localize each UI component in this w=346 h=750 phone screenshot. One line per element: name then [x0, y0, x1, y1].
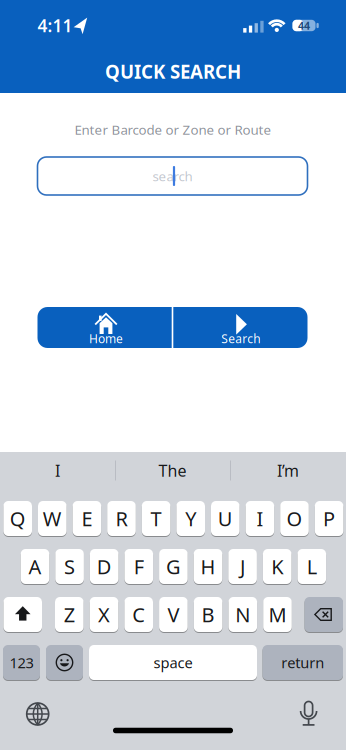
button[interactable]: [286, 687, 330, 731]
button[interactable]: Home: [39, 307, 173, 348]
staticText: S: [64, 553, 75, 580]
staticText: Y: [185, 505, 196, 532]
staticText: O: [286, 505, 302, 532]
staticText: X: [98, 601, 110, 628]
staticText: P: [323, 505, 335, 532]
staticText: Enter Barcode or Zone or Route: [74, 121, 271, 138]
staticText: E: [81, 505, 92, 532]
button[interactable]: C: [124, 596, 153, 633]
staticText: G: [166, 553, 181, 580]
staticText: I’m: [277, 460, 299, 481]
button[interactable]: F: [124, 548, 153, 585]
staticText: W: [43, 505, 62, 532]
button[interactable]: Search: [173, 307, 307, 348]
staticText: QUICK SEARCH: [105, 59, 241, 84]
staticText: R: [115, 505, 127, 532]
staticText: I: [55, 460, 60, 481]
staticText: F: [134, 553, 144, 580]
button[interactable]: L: [297, 548, 326, 585]
staticText: H: [200, 553, 215, 580]
staticText: I: [256, 505, 263, 532]
button[interactable]: I’m: [232, 453, 344, 487]
button[interactable]: N: [228, 596, 257, 633]
staticText: T: [151, 505, 162, 532]
staticText: B: [202, 601, 215, 628]
button[interactable]: B: [194, 596, 222, 633]
staticText: 4:11: [37, 14, 72, 37]
staticText: A: [28, 553, 41, 580]
staticText: return: [281, 653, 324, 672]
button[interactable]: P: [315, 500, 343, 537]
button[interactable]: Q: [3, 500, 32, 537]
staticText: Search: [221, 330, 260, 346]
button[interactable]: space: [89, 644, 257, 681]
staticText: N: [235, 601, 250, 628]
button[interactable]: Z: [55, 596, 84, 633]
staticText: Q: [10, 505, 26, 532]
button[interactable]: D: [90, 548, 118, 585]
staticText: K: [271, 553, 283, 580]
staticText: U: [218, 505, 233, 532]
button[interactable]: R: [107, 500, 136, 537]
button[interactable]: search: [37, 157, 307, 195]
button[interactable]: E: [73, 500, 101, 537]
staticText: C: [132, 601, 145, 628]
button[interactable]: [46, 644, 83, 681]
staticText: space: [153, 653, 192, 672]
button[interactable]: The: [116, 453, 228, 487]
staticText: search: [152, 167, 192, 185]
button[interactable]: [3, 596, 42, 633]
staticText: 44: [298, 18, 310, 33]
button[interactable]: [304, 596, 343, 633]
button[interactable]: 123: [3, 644, 40, 681]
button[interactable]: I: [246, 500, 274, 537]
button[interactable]: T: [142, 500, 170, 537]
staticText: The: [158, 460, 186, 481]
button[interactable]: X: [90, 596, 118, 633]
button[interactable]: M: [263, 596, 292, 633]
button[interactable]: S: [55, 548, 84, 585]
staticText: D: [97, 553, 112, 580]
button[interactable]: [18, 687, 62, 731]
button[interactable]: H: [194, 548, 222, 585]
staticText: M: [268, 601, 286, 628]
button[interactable]: A: [21, 548, 49, 585]
button[interactable]: O: [280, 500, 309, 537]
button[interactable]: I: [1, 453, 113, 487]
staticText: 123: [9, 653, 33, 672]
button[interactable]: U: [211, 500, 240, 537]
staticText: V: [167, 601, 179, 628]
button[interactable]: W: [38, 500, 67, 537]
button[interactable]: return: [262, 644, 343, 681]
button[interactable]: Y: [176, 500, 205, 537]
button[interactable]: J: [228, 548, 257, 585]
staticText: Z: [64, 601, 75, 628]
button[interactable]: G: [159, 548, 188, 585]
button[interactable]: V: [159, 596, 188, 633]
staticText: J: [240, 553, 245, 580]
staticText: L: [307, 553, 317, 580]
button[interactable]: K: [263, 548, 291, 585]
staticText: Home: [89, 330, 123, 346]
